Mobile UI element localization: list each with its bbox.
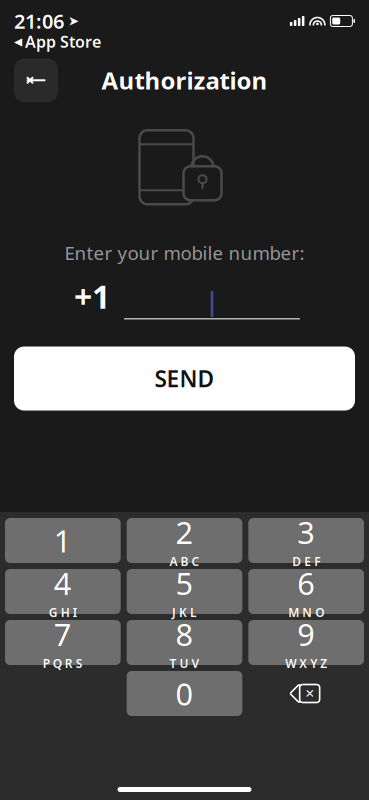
staticText: 8 [175,614,193,654]
button[interactable]: 9 [248,620,364,665]
button[interactable]: 7 [5,620,121,665]
staticText: 5 [175,563,193,603]
button[interactable]: 0 [127,671,242,716]
staticText: J K L [172,604,197,620]
staticText: 1 [54,520,72,561]
staticText: 0 [175,673,193,714]
staticText: 21:06 [14,8,64,34]
staticText: 6 [297,563,315,603]
staticText: 4 [54,563,72,603]
staticText: A B C [169,553,199,569]
staticText: ➤ [68,13,79,28]
staticText: M N O [288,604,324,620]
staticText: 9 [297,614,315,654]
staticText: Authorization [101,64,267,96]
staticText: ◀ [14,36,22,48]
button[interactable]: 1 [5,518,121,563]
staticText: SEND [154,363,214,394]
button[interactable]: 2 [127,518,242,563]
staticText: G H I [49,604,77,620]
staticText: 2 [175,512,193,552]
button[interactable]: 3 [248,518,364,563]
button[interactable]: Delete [248,671,364,716]
staticText: +1 [74,275,110,317]
staticText: P Q R S [43,655,83,671]
button[interactable]: Back [14,58,58,102]
staticText: ✕ [305,687,315,700]
staticText: App Store [25,31,101,52]
staticText: D E F [292,553,320,569]
staticText: 7 [54,614,72,654]
button[interactable]: 5 [127,569,242,614]
staticText: T U V [169,655,199,671]
staticText: 3 [297,512,315,552]
button[interactable]: 8 [127,620,242,665]
button[interactable]: 6 [248,569,364,614]
staticText: Enter your mobile number: [64,240,304,265]
button[interactable]: 4 [5,569,121,614]
staticText: W X Y Z [285,655,327,671]
button[interactable]: SEND [14,346,355,410]
